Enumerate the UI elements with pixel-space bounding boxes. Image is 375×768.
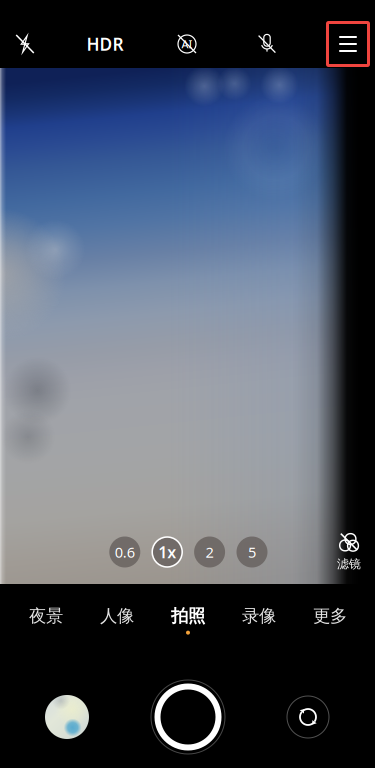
button[interactable]: Gallery [39, 689, 95, 745]
staticText: 1x [158, 541, 176, 563]
staticText: 滤镜 [337, 557, 361, 571]
button[interactable]: 夜景 [10, 600, 81, 640]
button[interactable]: AI camera off [163, 22, 211, 66]
staticText: 5 [248, 542, 256, 562]
button[interactable]: 拍照 [152, 600, 223, 640]
staticText: 夜景 [29, 605, 63, 627]
button[interactable]: More settings [324, 20, 372, 68]
button[interactable]: 1x [146, 531, 188, 573]
button[interactable]: 0.6 [104, 531, 146, 573]
staticText: 人像 [100, 605, 134, 627]
button[interactable]: Shutter [146, 675, 230, 759]
button[interactable]: 2 [188, 531, 231, 573]
staticText: HDR [86, 32, 123, 55]
staticText: 拍照 [171, 605, 205, 627]
button[interactable]: 人像 [81, 600, 152, 640]
staticText: 更多 [313, 605, 347, 627]
button[interactable]: Switch camera [280, 689, 336, 745]
button[interactable]: HDR [81, 22, 129, 66]
staticText: 2 [206, 542, 214, 562]
button[interactable]: 5 [231, 531, 273, 573]
button[interactable]: Filters [325, 529, 373, 573]
staticText: 0.6 [115, 542, 135, 562]
button[interactable]: 更多 [294, 600, 365, 640]
staticText: AI [181, 37, 192, 51]
button[interactable]: Record audio off [243, 22, 291, 66]
staticText: 录像 [242, 605, 276, 627]
button[interactable]: 录像 [223, 600, 294, 640]
button[interactable]: Flash off [1, 22, 49, 66]
